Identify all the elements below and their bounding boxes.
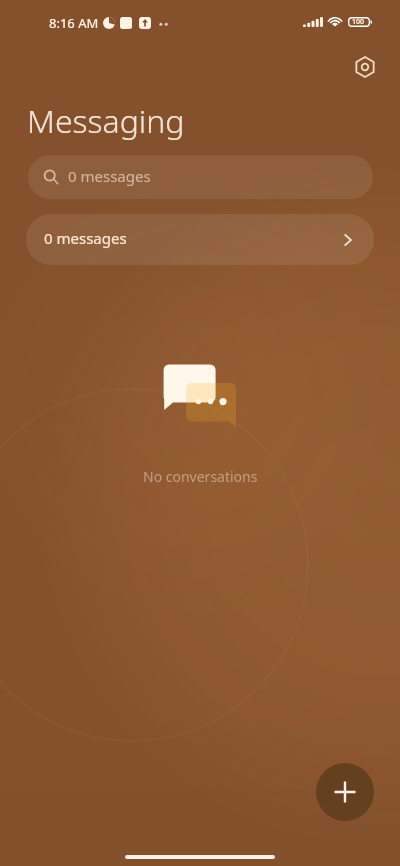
button[interactable]: Start new conversation	[316, 763, 374, 821]
staticText: 8:16 AM	[49, 14, 99, 32]
staticText: No conversations	[143, 467, 258, 486]
staticText: 100	[352, 17, 365, 27]
button[interactable]: 0 messages	[28, 155, 373, 199]
staticText: Messaging	[27, 99, 185, 143]
staticText: 0 messages	[44, 228, 127, 248]
button[interactable]: 0 messages	[26, 214, 374, 265]
button[interactable]: Settings	[349, 51, 381, 83]
staticText: 0 messages	[68, 166, 151, 186]
